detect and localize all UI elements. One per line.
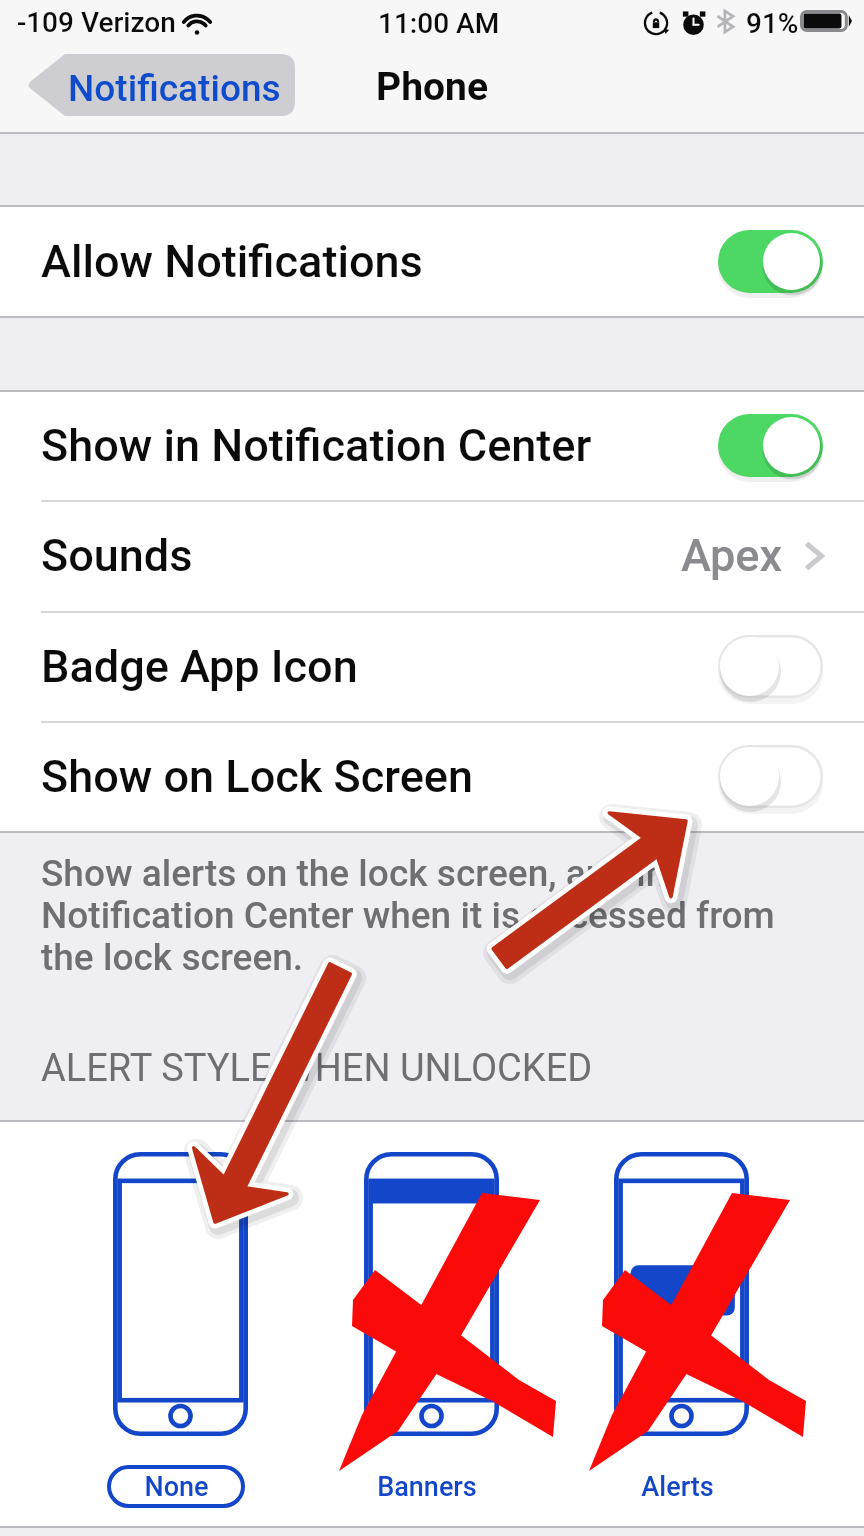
staticText: Phone xyxy=(376,64,488,110)
staticText: Badge App Icon xyxy=(41,640,718,693)
button[interactable]: Sounds xyxy=(0,500,864,611)
button[interactable]: Show on Lock Screen xyxy=(0,721,864,832)
button[interactable]: Switch on xyxy=(718,230,823,293)
staticText: Show on Lock Screen xyxy=(41,750,718,803)
staticText: ALERT STYLE WHEN UNLOCKED xyxy=(41,1046,593,1091)
button[interactable]: Switch on xyxy=(718,414,823,477)
button[interactable]: Allow Notifications xyxy=(0,207,864,316)
staticText: 11:00 AM xyxy=(378,7,500,40)
staticText: Sounds xyxy=(41,529,681,582)
button[interactable]: Badge App Icon xyxy=(0,611,864,721)
button[interactable]: Show in Notification Center xyxy=(0,391,864,500)
button[interactable]: Notifications xyxy=(27,54,295,116)
staticText: Show alerts on the lock screen, and in N… xyxy=(41,852,775,979)
button[interactable]: Switch off xyxy=(718,635,823,698)
button[interactable]: Banners xyxy=(364,1122,502,1512)
staticText: Allow Notifications xyxy=(41,235,718,288)
staticText: -109 Verizon xyxy=(17,6,176,39)
button[interactable]: Alerts xyxy=(614,1122,752,1512)
staticText: Alerts xyxy=(641,1471,714,1503)
staticText: Notifications xyxy=(68,67,281,110)
staticText: None xyxy=(144,1471,209,1503)
staticText: Apex xyxy=(681,529,783,582)
button[interactable]: Switch off xyxy=(718,745,823,808)
staticText: Show in Notification Center xyxy=(41,419,718,472)
staticText: Banners xyxy=(377,1471,477,1503)
button[interactable]: None xyxy=(113,1122,251,1512)
staticText: 91% xyxy=(746,7,799,40)
